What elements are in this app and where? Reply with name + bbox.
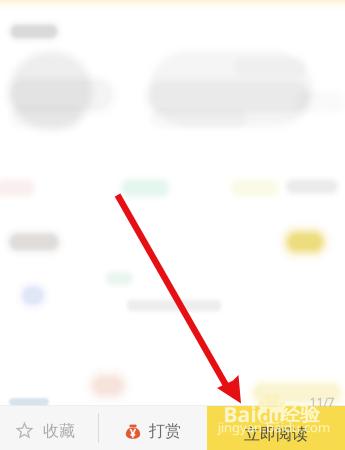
button[interactable]: 立即阅读	[207, 406, 345, 450]
button[interactable]: ¥	[99, 406, 207, 450]
staticText: Bai	[223, 400, 256, 428]
staticText: 经验	[280, 402, 320, 426]
staticText: ¥	[129, 425, 136, 441]
staticText: du	[260, 404, 282, 427]
button[interactable]: 收藏	[0, 406, 98, 450]
staticText: jingyan.baidu.com	[218, 418, 330, 436]
staticText: 11/7	[309, 394, 334, 410]
staticText: 打赏	[149, 421, 181, 441]
staticText: 收藏	[43, 421, 75, 441]
staticText: 立即阅读	[244, 424, 308, 444]
